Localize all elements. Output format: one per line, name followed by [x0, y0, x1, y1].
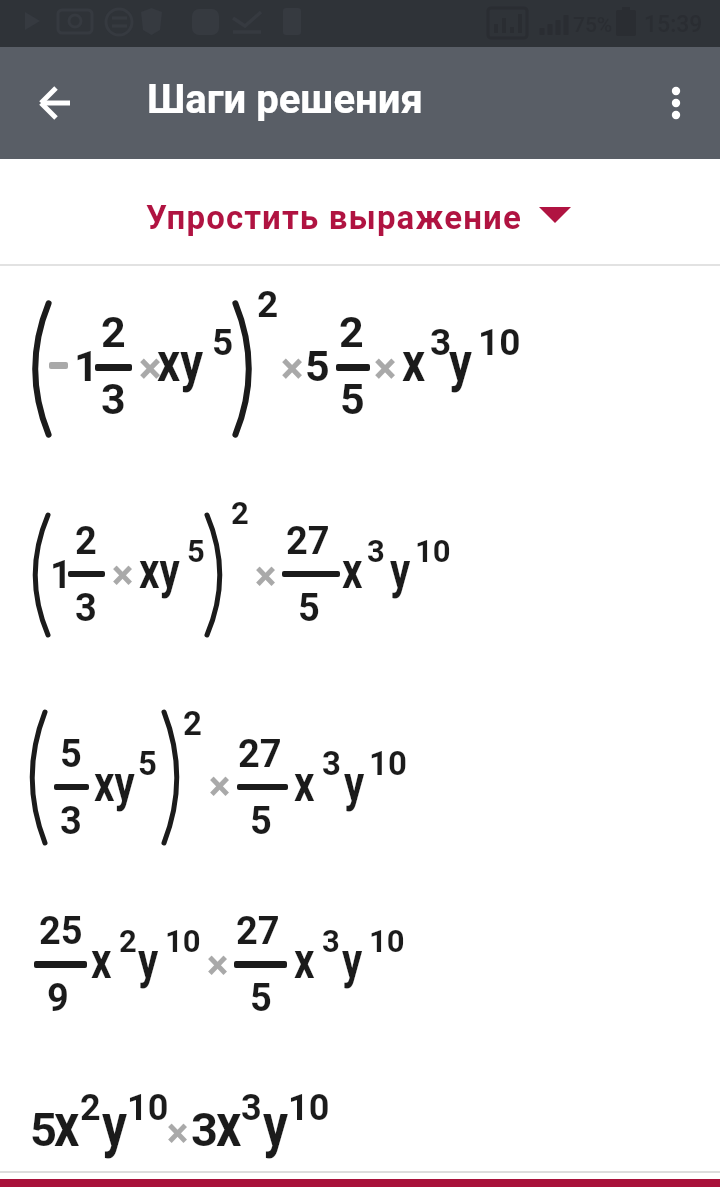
staticText: 5	[250, 976, 272, 1021]
staticText: 3	[241, 1087, 262, 1129]
staticText: 5	[138, 744, 157, 783]
staticText: x	[402, 329, 425, 394]
staticText: 2	[80, 1087, 101, 1129]
staticText: 27	[286, 519, 330, 564]
staticText: Упростить выражение	[146, 198, 522, 237]
staticText: 2	[231, 495, 249, 531]
staticText: 5	[340, 374, 365, 424]
staticText: 2	[183, 704, 202, 743]
staticText: 10	[415, 533, 451, 569]
staticText: 10	[369, 744, 407, 783]
staticText: 3	[322, 923, 340, 959]
staticText: x	[294, 755, 315, 813]
staticText: y	[138, 932, 159, 990]
staticText: 10	[369, 923, 405, 959]
staticText: xy	[139, 542, 180, 600]
staticText: 5	[30, 1102, 57, 1157]
staticText: 2	[101, 307, 126, 357]
staticText: y	[344, 755, 365, 813]
staticText: y	[449, 329, 472, 394]
staticText: 1	[74, 341, 99, 391]
staticText: 27	[238, 732, 282, 777]
staticText: ×	[112, 552, 134, 599]
staticText: 10	[478, 321, 521, 364]
staticText: 1	[50, 553, 72, 598]
staticText: 3	[430, 321, 452, 364]
staticText: 5	[187, 533, 205, 569]
staticText: 2	[75, 519, 97, 564]
staticText: 3	[101, 374, 126, 424]
staticText: y	[263, 1089, 288, 1160]
staticText: ×	[207, 942, 229, 989]
staticText: y	[102, 1089, 127, 1160]
staticText: 5	[60, 732, 82, 777]
staticText: x	[216, 1089, 241, 1160]
staticText: x	[342, 542, 363, 600]
staticText: 3	[367, 533, 385, 569]
button[interactable]	[646, 74, 706, 134]
staticText: 5	[305, 341, 330, 391]
staticText: ×	[374, 344, 397, 393]
staticText: 3	[75, 586, 97, 631]
staticText: 3	[191, 1102, 218, 1157]
staticText: 10	[288, 1087, 330, 1129]
staticText: ×	[209, 763, 231, 810]
staticText: 9	[47, 976, 69, 1021]
staticText: 3	[60, 799, 82, 844]
staticText: ×	[255, 553, 277, 600]
staticText: y	[390, 542, 411, 600]
staticText: y	[342, 932, 363, 990]
button[interactable]	[130, 185, 590, 245]
staticText: 5	[250, 799, 272, 844]
staticText: 5	[212, 321, 234, 364]
staticText: 10	[127, 1087, 169, 1129]
staticText: 25	[39, 909, 83, 954]
staticText: 10	[165, 923, 201, 959]
button[interactable]	[22, 69, 90, 137]
staticText: 2	[339, 307, 364, 357]
staticText: xy	[157, 329, 204, 394]
staticText: 5	[298, 586, 320, 631]
staticText: ×	[167, 1110, 189, 1157]
staticText: 2	[119, 923, 137, 959]
staticText: 2	[257, 283, 279, 326]
staticText: 27	[236, 909, 280, 954]
staticText: 3	[322, 744, 341, 783]
staticText: xy	[94, 755, 135, 813]
staticText: x	[54, 1089, 79, 1160]
staticText: ×	[281, 344, 304, 393]
staticText: x	[91, 932, 112, 990]
staticText: x	[294, 932, 315, 990]
staticText: Шаги решения	[147, 76, 423, 123]
staticText: ×	[139, 344, 162, 393]
